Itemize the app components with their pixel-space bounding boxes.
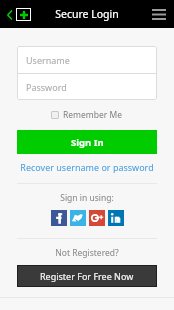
staticText: Sign in using: <box>0 192 174 204</box>
button[interactable]: Password <box>17 74 157 100</box>
staticText: Secure Login <box>55 7 119 21</box>
button[interactable]: Twitter <box>70 210 86 226</box>
button[interactable]: Back <box>4 5 33 24</box>
button[interactable]: Recover username or password <box>0 160 174 174</box>
staticText: Not Registered? <box>0 247 174 259</box>
button[interactable]: LinkedIn <box>108 210 124 226</box>
staticText: Register For Free Now <box>40 270 134 282</box>
button[interactable]: Google Plus <box>89 210 105 226</box>
button[interactable]: Facebook <box>51 210 67 226</box>
staticText: Remember Me <box>63 109 123 121</box>
button[interactable]: Remember Me <box>49 107 125 123</box>
staticText: Username <box>26 54 70 66</box>
button[interactable]: Sign In <box>17 130 157 154</box>
button[interactable]: Register For Free Now <box>17 265 157 287</box>
button[interactable]: Menu <box>144 3 174 26</box>
staticText: Recover username or password <box>20 161 154 173</box>
staticText: Sign In <box>71 136 104 149</box>
button[interactable]: Username <box>17 46 157 73</box>
staticText: Password <box>26 81 67 93</box>
